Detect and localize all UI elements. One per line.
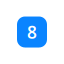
button[interactable]: 8 unread: [17, 16, 47, 47]
staticText: 8: [27, 20, 37, 43]
